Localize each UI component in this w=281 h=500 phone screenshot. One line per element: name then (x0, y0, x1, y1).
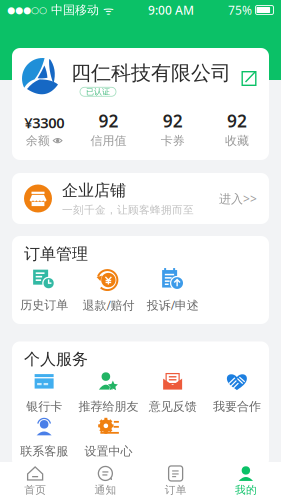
button[interactable]: 投诉/申述 (140, 267, 205, 313)
button[interactable]: 通知 (70, 465, 140, 496)
staticText: 历史订单 (20, 298, 68, 312)
button[interactable]: ¥3300 (12, 113, 76, 148)
staticText: 我的 (235, 483, 257, 496)
button[interactable]: 推荐给朋友 (76, 369, 140, 414)
button[interactable]: 编辑资料 (241, 70, 269, 86)
staticText: 收藏 (225, 133, 249, 148)
button[interactable]: 银行卡 (12, 369, 76, 414)
staticText: 卡券 (161, 133, 185, 148)
button[interactable]: 92 (76, 109, 140, 148)
staticText: ᯤ (103, 2, 114, 18)
button[interactable]: 设置中心 (76, 414, 140, 458)
staticText: ●●●○○ (7, 5, 47, 15)
button[interactable]: 联系客服 (12, 414, 76, 458)
staticText: 余额 (26, 133, 50, 148)
button[interactable]: 企业店铺 (12, 173, 269, 224)
staticText: 9:00 AM (148, 2, 194, 18)
button[interactable]: 我要合作 (205, 369, 269, 414)
staticText: 订单 (165, 483, 187, 496)
staticText: 个人服务 (24, 349, 88, 369)
staticText: 进入>> (219, 190, 257, 206)
button[interactable]: 92 (140, 109, 205, 148)
staticText: 通知 (94, 483, 116, 496)
staticText: 推荐给朋友 (78, 399, 138, 414)
staticText: 意见反馈 (149, 399, 197, 414)
staticText: 92 (227, 109, 247, 132)
staticText: 92 (163, 109, 183, 132)
button[interactable]: 首页 (0, 465, 70, 496)
staticText: 我要合作 (213, 399, 261, 414)
staticText: 信用值 (90, 133, 126, 148)
button[interactable]: 退款/赔付 (76, 267, 140, 313)
staticText: 中国移动 (47, 3, 103, 17)
staticText: 一刻千金，让顾客蜂拥而至 (62, 203, 194, 216)
staticText: 已认证 (86, 87, 110, 97)
button[interactable]: 订单 (140, 465, 211, 496)
staticText: 75% (228, 2, 252, 18)
staticText: 92 (98, 109, 118, 132)
staticText: 银行卡 (26, 399, 62, 414)
button[interactable]: 意见反馈 (140, 369, 205, 414)
staticText: ¥3300 (24, 113, 64, 132)
staticText: 投诉/申述 (147, 297, 199, 313)
staticText: 设置中心 (84, 444, 132, 458)
staticText: 退款/赔付 (82, 297, 134, 313)
staticText: 首页 (24, 483, 46, 496)
staticText: 订单管理 (24, 244, 88, 264)
button[interactable]: 92 (205, 109, 269, 148)
staticText: 联系客服 (20, 444, 68, 458)
button[interactable]: 历史订单 (12, 268, 76, 312)
staticText: 四仁科技有限公司 (71, 61, 231, 85)
staticText: 企业店铺 (62, 181, 126, 200)
button[interactable]: 我的 (211, 465, 281, 496)
